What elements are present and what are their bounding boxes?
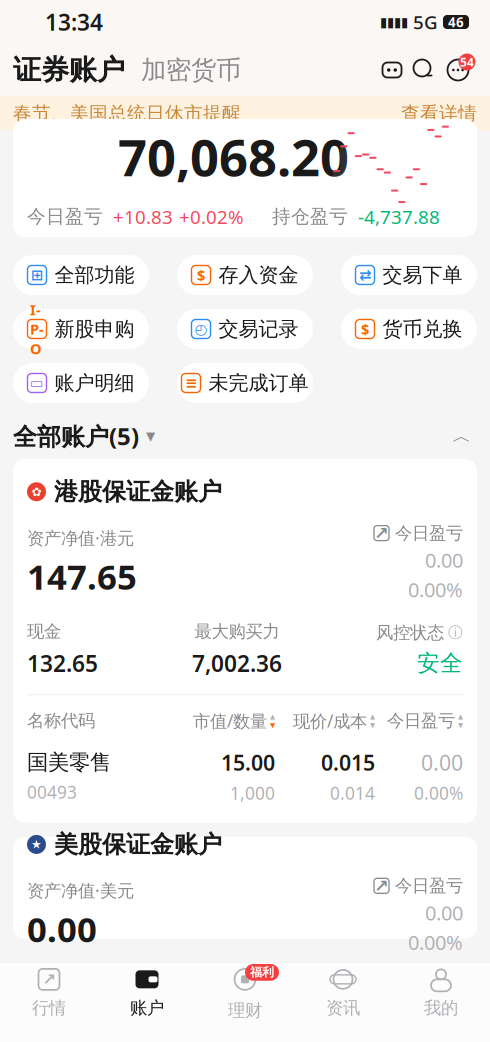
staticText: 今日盈亏: [27, 205, 103, 228]
staticText: 15.00: [221, 748, 275, 777]
staticText: ︿: [452, 424, 471, 447]
button[interactable]: 收起: [447, 421, 477, 451]
staticText: 0.00: [425, 899, 463, 926]
staticText: 0.00: [27, 906, 97, 952]
staticText: ✿: [31, 485, 41, 498]
staticText: 我的: [424, 997, 458, 1019]
staticText: 最大购买力: [194, 621, 279, 642]
staticText: 货币兑换: [382, 317, 462, 341]
button[interactable]: ◴: [177, 309, 313, 349]
button[interactable]: 账户: [98, 964, 196, 1020]
button[interactable]: 福利: [196, 964, 294, 1020]
staticText: $: [361, 319, 369, 339]
button[interactable]: ⊞: [13, 255, 149, 295]
button[interactable]: ⇄: [341, 255, 477, 295]
button[interactable]: ★: [13, 837, 477, 939]
button[interactable]: ▭: [13, 363, 149, 403]
staticText: 理财: [228, 1000, 262, 1021]
staticText: 0.00%: [408, 929, 463, 956]
staticText: 全部功能: [54, 263, 134, 287]
button[interactable]: 资讯: [294, 964, 392, 1020]
button[interactable]: 全部账户(5): [13, 420, 155, 452]
staticText: 今日盈亏: [387, 710, 455, 731]
staticText: 0.015: [321, 748, 375, 777]
button[interactable]: 消息: [441, 53, 475, 87]
staticText: 全部账户(5): [13, 420, 139, 452]
button[interactable]: $: [341, 309, 477, 349]
button[interactable]: 分享盈亏: [374, 526, 389, 541]
button[interactable]: 搜索: [407, 55, 441, 85]
staticText: ★: [31, 838, 42, 851]
staticText: 市值/数量: [193, 709, 267, 732]
staticText: 70,068.20: [118, 123, 349, 190]
staticText: ▼: [270, 721, 275, 729]
staticText: 0.00: [425, 547, 463, 573]
staticText: 147.65: [27, 553, 137, 599]
staticText: ↗: [42, 970, 55, 988]
staticText: 未完成订单: [208, 371, 308, 395]
staticText: 福利: [250, 965, 274, 980]
staticText: ▼: [458, 721, 463, 729]
staticText: 行情: [32, 997, 66, 1019]
staticText: 存入资金: [218, 263, 298, 287]
staticText: 今日盈亏: [395, 522, 463, 544]
staticText: 资产净值·港元: [27, 526, 134, 549]
staticText: 账户: [130, 997, 164, 1019]
staticText: 现价/成本: [293, 709, 367, 732]
button[interactable]: 分享盈亏: [374, 878, 389, 893]
staticText: 今日盈亏: [395, 875, 463, 896]
staticText: 交易记录: [218, 317, 298, 341]
staticText: 国美零售: [27, 749, 111, 776]
staticText: 美股保证金账户: [54, 830, 222, 859]
button[interactable]: 春节、美国总统日休市提醒: [0, 96, 490, 131]
staticText: ▼: [146, 429, 155, 443]
button[interactable]: ✿: [13, 459, 477, 823]
staticText: 资讯: [326, 997, 360, 1019]
staticText: 7,002.36: [192, 648, 282, 678]
button[interactable]: 证券账户: [13, 53, 125, 87]
staticText: 名称代码: [27, 710, 95, 731]
staticText: 0.00%: [414, 782, 463, 805]
staticText: 春节、美国总统日休市提醒: [13, 102, 241, 125]
staticText: 持仓盈亏: [272, 205, 348, 228]
button[interactable]: ≡: [177, 363, 313, 403]
button[interactable]: 我的: [392, 964, 490, 1020]
staticText: 证券账户: [13, 53, 125, 87]
staticText: ⊞: [31, 267, 43, 283]
staticText: 账户明细: [54, 371, 134, 395]
staticText: ▮▮▮▮: [380, 14, 408, 29]
staticText: 港股保证金账户: [54, 477, 222, 506]
staticText: 5G: [413, 10, 438, 34]
staticText: 0.00: [421, 748, 463, 777]
button[interactable]: AI 助手: [377, 55, 407, 85]
button[interactable]: 加密货币: [125, 54, 241, 85]
staticText: ▼: [370, 721, 375, 729]
staticText: +0.02%: [179, 204, 244, 229]
staticText: ▲: [370, 713, 375, 720]
staticText: ◴: [194, 321, 207, 337]
staticText: 0.014: [330, 782, 375, 805]
staticText: 查看详情: [401, 102, 477, 125]
staticText: 1,000: [230, 782, 275, 805]
staticText: ⇄: [359, 267, 371, 283]
staticText: 资产净值·美元: [27, 879, 134, 902]
staticText: 0.00%: [408, 576, 463, 603]
button[interactable]: ↗: [0, 964, 98, 1020]
staticText: ⓘ: [448, 624, 463, 642]
staticText: 00493: [27, 781, 77, 804]
staticText: 现金: [27, 621, 61, 642]
staticText: 13:34: [45, 7, 103, 37]
staticText: IPO: [30, 300, 44, 358]
staticText: 交易下单: [382, 263, 462, 287]
button[interactable]: $: [177, 255, 313, 295]
staticText: $: [197, 265, 205, 285]
staticText: ▭: [30, 375, 44, 391]
staticText: 46: [448, 13, 464, 31]
staticText: -4,737.88: [358, 204, 440, 229]
staticText: ↗: [374, 876, 389, 896]
staticText: 加密货币: [141, 54, 241, 85]
button[interactable]: IPO: [13, 309, 149, 349]
staticText: 新股申购: [54, 317, 134, 341]
staticText: 132.65: [27, 648, 98, 678]
staticText: 安全: [417, 649, 463, 677]
